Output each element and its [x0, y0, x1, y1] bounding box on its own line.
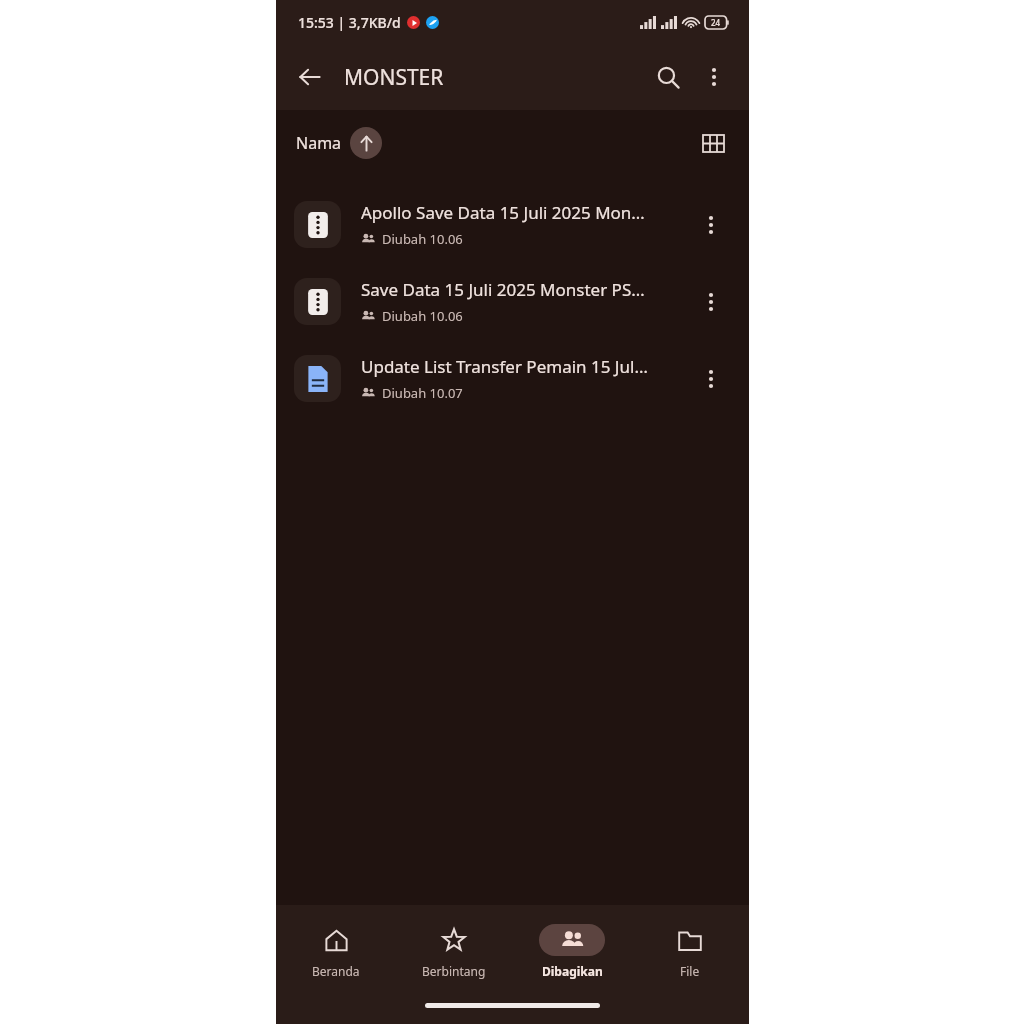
staticText: File [680, 963, 700, 979]
button[interactable]: Back [288, 55, 332, 99]
staticText: Apollo Save Data 15 Juli 2025 Mon… [361, 201, 645, 224]
staticText: Save Data 15 Juli 2025 Monster PS… [361, 278, 645, 301]
staticText: Diubah 10.07 [382, 384, 463, 402]
staticText: MONSTER [344, 63, 444, 92]
staticText: Diubah 10.06 [382, 307, 463, 325]
staticText: Berbintang [422, 963, 486, 979]
staticText: Dibagikan [542, 963, 603, 979]
button[interactable]: Nama [290, 123, 388, 163]
button[interactable]: More options for Apollo Save Data 15 Jul… [691, 205, 731, 245]
button[interactable]: Save Data 15 Juli 2025 Monster PS… [276, 263, 749, 340]
button[interactable]: Berbintang [395, 905, 513, 997]
staticText: Diubah 10.06 [382, 230, 463, 248]
staticText: Update List Transfer Pemain 15 Jul… [361, 355, 648, 378]
button[interactable]: Apollo Save Data 15 Juli 2025 Mon… [276, 186, 749, 263]
staticText: Beranda [312, 963, 360, 979]
button[interactable]: More options [691, 54, 737, 100]
staticText: 24 [711, 17, 721, 28]
button[interactable]: More options for Save Data 15 Juli 2025 … [691, 282, 731, 322]
button[interactable]: File [631, 905, 749, 997]
button[interactable]: Beranda [276, 905, 395, 997]
button[interactable]: Search [645, 54, 691, 100]
button[interactable]: More options for Update List Transfer Pe… [691, 359, 731, 399]
button[interactable]: Update List Transfer Pemain 15 Jul… [276, 340, 749, 417]
button[interactable]: Grid view [693, 123, 733, 163]
button[interactable]: Dibagikan [513, 905, 631, 997]
staticText: Nama [296, 132, 342, 154]
staticText: 15:53 | 3,7KB/d [298, 13, 401, 32]
